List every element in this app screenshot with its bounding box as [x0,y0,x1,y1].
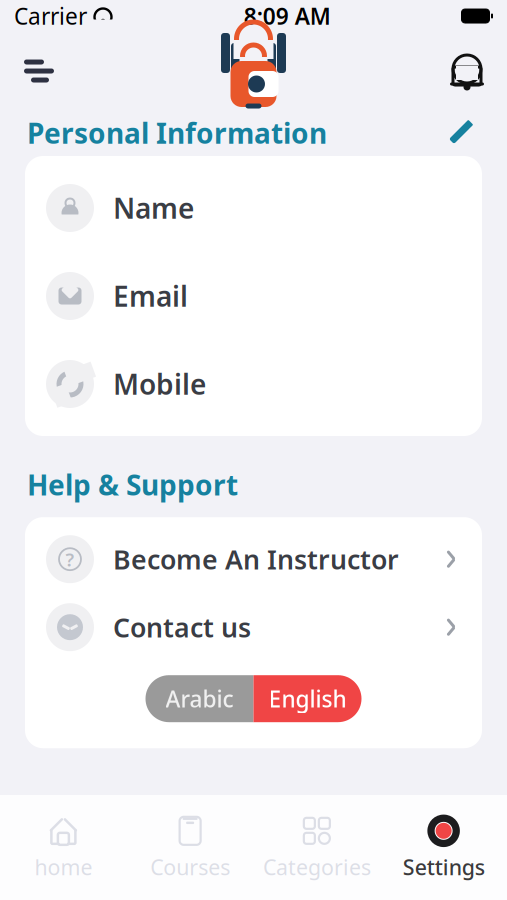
button[interactable]: Edit personal information [440,116,480,150]
staticText: Courses [150,853,230,881]
staticText: ? [65,547,74,572]
button[interactable]: home [0,795,127,900]
staticText: Carrier [14,1,87,31]
staticText: Mobile [113,365,206,403]
button[interactable]: Name [25,164,482,252]
staticText: Personal Information [27,114,327,152]
staticText: Contact us [113,609,251,645]
button[interactable]: Arabic [145,675,253,722]
staticText: Name [113,189,194,227]
staticText: Help & Support [27,466,238,503]
button[interactable]: Courses [127,795,254,900]
button[interactable]: Notifications [441,45,493,97]
button[interactable]: Email [25,252,482,340]
button[interactable]: English [253,675,361,722]
button[interactable]: Contact us [25,593,482,661]
staticText: English [268,684,346,714]
staticText: Categories [263,853,371,881]
staticText: Arabic [165,684,233,714]
staticText: Become An Instructor [113,541,399,577]
staticText: home [34,853,92,881]
staticText: 8:09 AM [244,1,331,31]
staticText: Settings [403,853,485,881]
button[interactable]: Mobile [25,340,482,428]
staticText: Email [113,277,188,315]
button[interactable]: Settings [380,795,507,900]
button[interactable]: ? [25,525,482,593]
button[interactable]: Menu [14,45,66,97]
button[interactable]: Categories [253,795,380,900]
